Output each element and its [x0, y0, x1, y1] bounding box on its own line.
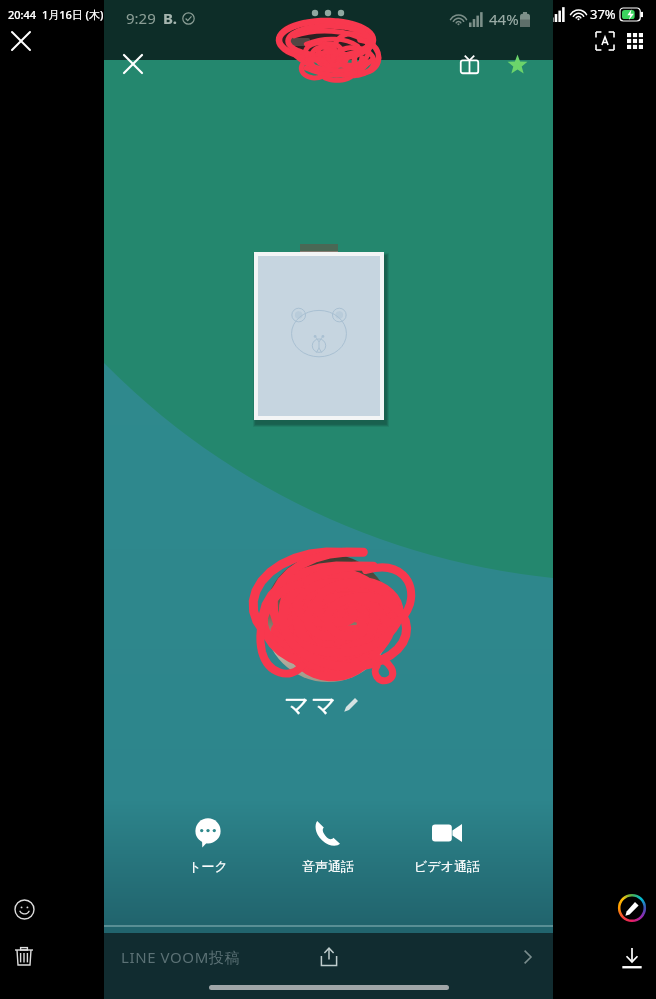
- button[interactable]: Save: [614, 940, 650, 976]
- button[interactable]: トーク: [158, 818, 258, 874]
- staticText: ビデオ通話: [414, 858, 480, 874]
- staticText: 37%: [590, 5, 616, 23]
- staticText: LINE VOOM投稿: [121, 947, 241, 967]
- button[interactable]: Close profile: [115, 46, 151, 82]
- button[interactable]: Close: [6, 26, 36, 56]
- button[interactable]: Apps: [620, 26, 650, 56]
- staticText: B.: [163, 8, 178, 28]
- button[interactable]: Favorite: [499, 46, 535, 82]
- button[interactable]: Sticker: [8, 893, 40, 925]
- button[interactable]: Delete: [8, 940, 40, 972]
- staticText: トーク: [188, 858, 228, 874]
- button[interactable]: 音声通話: [278, 818, 378, 874]
- button[interactable]: ビデオ通話: [397, 818, 497, 874]
- staticText: 9:29: [126, 8, 156, 28]
- button[interactable]: Draw: [614, 890, 650, 926]
- staticText: ママ: [284, 690, 339, 721]
- staticText: 音声通話: [302, 858, 354, 874]
- staticText: 20:44 1月16日 (木): [8, 7, 104, 22]
- staticText: 44%: [489, 9, 519, 29]
- button[interactable]: LINE VOOM投稿: [104, 933, 553, 981]
- button[interactable]: Profile photo: [264, 554, 392, 682]
- button[interactable]: Gift: [451, 46, 487, 82]
- button[interactable]: Extract text: [590, 26, 620, 56]
